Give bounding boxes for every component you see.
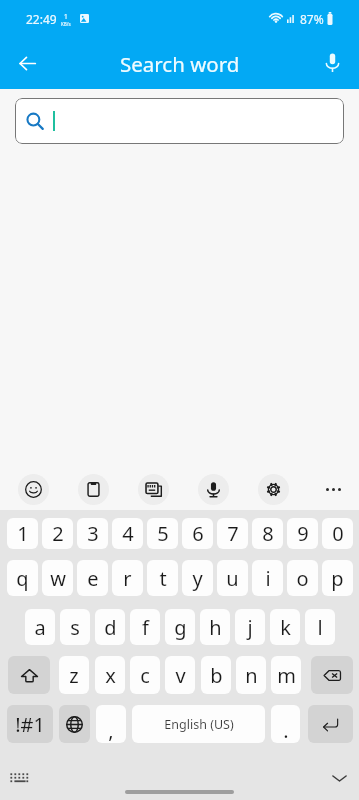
button[interactable]: 2 <box>42 518 73 549</box>
button[interactable]: g <box>165 609 195 645</box>
button[interactable]: Emoji <box>18 474 49 505</box>
staticText: . <box>283 717 289 743</box>
staticText: j <box>247 614 253 641</box>
staticText: Search word <box>120 50 240 78</box>
staticText: h <box>209 614 222 641</box>
button[interactable]: q <box>7 560 38 596</box>
staticText: 0 <box>332 520 344 547</box>
button[interactable]: Backspace <box>311 656 353 694</box>
button[interactable]: 3 <box>77 518 108 549</box>
button[interactable]: z <box>59 656 89 694</box>
staticText: 87% <box>300 11 324 27</box>
staticText: 4 <box>122 520 134 547</box>
button[interactable]: t <box>147 560 178 596</box>
staticText: x <box>105 662 116 689</box>
staticText: v <box>175 662 186 689</box>
button[interactable]: Translate <box>138 474 169 505</box>
button[interactable]: 9 <box>287 518 318 549</box>
button[interactable]: v <box>165 656 195 694</box>
button[interactable]: a <box>25 609 55 645</box>
staticText: p <box>331 565 344 592</box>
staticText: s <box>70 614 80 641</box>
button[interactable]: x <box>95 656 125 694</box>
button[interactable]: English (US) <box>132 705 265 743</box>
button[interactable]: 4 <box>112 518 143 549</box>
staticText: , <box>108 717 114 743</box>
button[interactable]: Change language <box>59 705 90 743</box>
button[interactable]: b <box>201 656 231 694</box>
staticText: 2 <box>52 520 64 547</box>
button[interactable]: n <box>236 656 266 694</box>
staticText: 5 <box>157 520 169 547</box>
button[interactable]: w <box>42 560 73 596</box>
button[interactable]: 1 <box>7 518 38 549</box>
staticText: !#1 <box>15 711 45 738</box>
button[interactable]: k <box>270 609 300 645</box>
button[interactable]: 7 <box>217 518 248 549</box>
staticText: z <box>69 662 79 689</box>
button[interactable]: . <box>271 705 300 743</box>
button[interactable]: m <box>271 656 301 694</box>
button[interactable]: Voice input <box>198 474 229 505</box>
staticText: 9 <box>297 520 309 547</box>
staticText: g <box>174 614 187 641</box>
button[interactable]: o <box>287 560 318 596</box>
button[interactable]: Enter <box>308 705 353 743</box>
button[interactable]: d <box>95 609 125 645</box>
button[interactable]: 8 <box>252 518 283 549</box>
staticText: n <box>245 662 258 689</box>
button[interactable]: More options <box>318 474 349 505</box>
staticText: KB/s <box>61 21 71 27</box>
staticText: 8 <box>262 520 274 547</box>
staticText: r <box>123 565 132 592</box>
button[interactable]: 0 <box>322 518 353 549</box>
staticText: y <box>192 565 203 592</box>
button[interactable]: y <box>182 560 213 596</box>
button[interactable]: , <box>96 705 126 743</box>
staticText: English (US) <box>164 716 234 733</box>
button[interactable]: u <box>217 560 248 596</box>
button[interactable]: Shift <box>8 656 50 694</box>
button[interactable]: c <box>130 656 160 694</box>
button[interactable]: Settings <box>258 474 289 505</box>
staticText: 22:49 <box>26 11 57 27</box>
staticText: m <box>277 662 296 689</box>
button[interactable]: l <box>305 609 335 645</box>
staticText: a <box>34 614 46 641</box>
button[interactable]: i <box>252 560 283 596</box>
staticText: 3 <box>87 520 99 547</box>
button[interactable] <box>15 98 344 144</box>
button[interactable]: 5 <box>147 518 178 549</box>
staticText: k <box>280 614 291 641</box>
staticText: q <box>16 565 29 592</box>
button[interactable]: Voice search <box>313 44 351 82</box>
button[interactable]: f <box>130 609 160 645</box>
button[interactable]: Hide keyboard <box>325 764 353 792</box>
button[interactable]: j <box>235 609 265 645</box>
button[interactable]: h <box>200 609 230 645</box>
button[interactable]: s <box>60 609 90 645</box>
staticText: 7 <box>227 520 239 547</box>
button[interactable]: 6 <box>182 518 213 549</box>
staticText: l <box>317 614 323 641</box>
staticText: w <box>50 565 66 592</box>
staticText: 1 <box>64 12 68 21</box>
staticText: f <box>142 614 149 641</box>
staticText: 6 <box>192 520 204 547</box>
staticText: c <box>140 662 150 689</box>
button[interactable]: r <box>112 560 143 596</box>
staticText: d <box>104 614 117 641</box>
button[interactable]: p <box>322 560 353 596</box>
staticText: b <box>210 662 223 689</box>
staticText: 1 <box>17 520 29 547</box>
button[interactable]: Back <box>8 44 46 82</box>
staticText: i <box>265 565 271 592</box>
button[interactable]: Clipboard <box>78 474 109 505</box>
button[interactable]: Keyboard layout <box>5 762 35 792</box>
button[interactable]: !#1 <box>7 705 53 743</box>
staticText: t <box>159 565 167 592</box>
button[interactable]: e <box>77 560 108 596</box>
staticText: o <box>296 565 309 592</box>
staticText: u <box>226 565 239 592</box>
staticText: e <box>87 565 99 592</box>
